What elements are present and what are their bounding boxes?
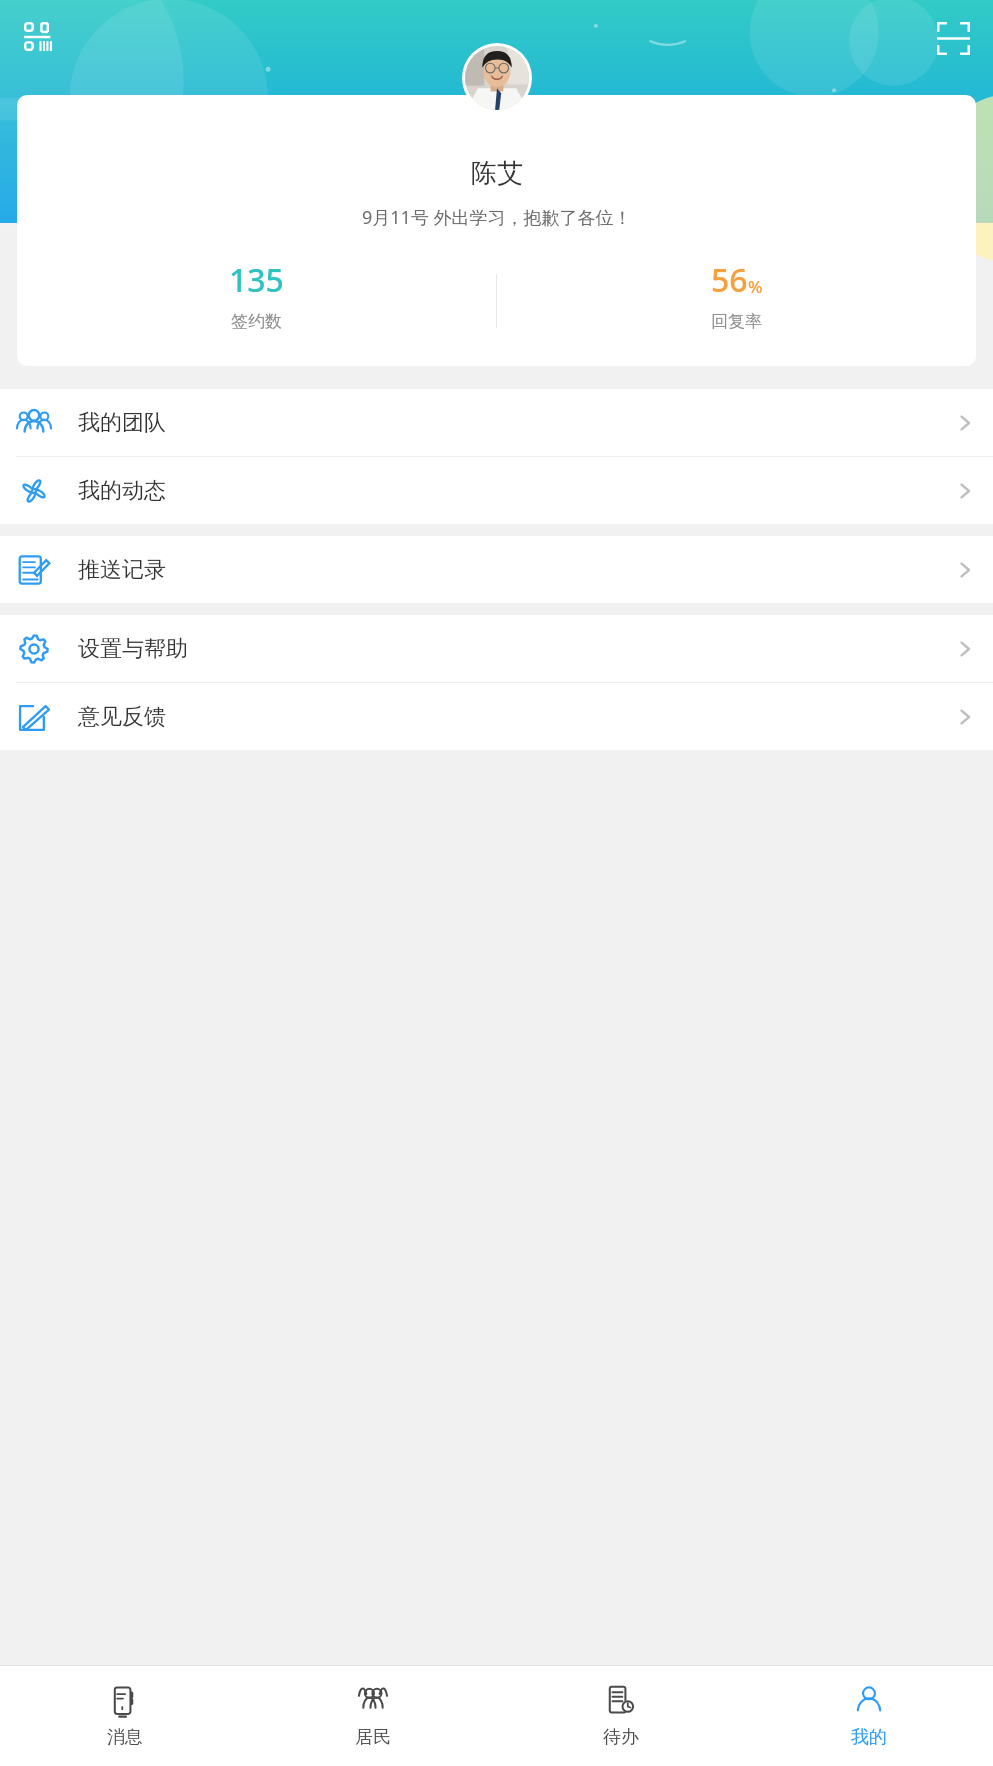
- button[interactable]: 56: [497, 258, 976, 344]
- button[interactable]: 135: [17, 258, 496, 344]
- staticText: 我的: [851, 1726, 887, 1749]
- button[interactable]: 消息: [0, 1666, 249, 1766]
- button[interactable]: 意见反馈: [0, 683, 993, 750]
- staticText: 签约数: [231, 311, 282, 332]
- staticText: 陈艾: [471, 157, 523, 190]
- staticText: 56: [711, 258, 748, 302]
- staticText: 我的团队: [78, 409, 166, 437]
- button[interactable]: Scan: [929, 14, 977, 62]
- staticText: 我的动态: [78, 477, 166, 505]
- staticText: %: [748, 275, 763, 298]
- button[interactable]: 我的: [745, 1666, 993, 1766]
- button[interactable]: 我的团队: [0, 389, 993, 456]
- staticText: 回复率: [711, 311, 762, 332]
- staticText: 待办: [603, 1726, 639, 1749]
- staticText: 意见反馈: [78, 703, 166, 731]
- button[interactable]: 推送记录: [0, 536, 993, 603]
- button[interactable]: 设置与帮助: [0, 615, 993, 682]
- staticText: 9月11号 外出学习，抱歉了各位！: [362, 205, 632, 230]
- staticText: 设置与帮助: [78, 635, 188, 663]
- staticText: 135: [229, 258, 284, 302]
- staticText: 居民: [355, 1726, 391, 1749]
- button[interactable]: 我的动态: [0, 457, 993, 524]
- staticText: 推送记录: [78, 556, 166, 584]
- staticText: 消息: [107, 1726, 143, 1749]
- button[interactable]: 居民: [249, 1666, 497, 1766]
- button[interactable]: QR code: [16, 14, 64, 62]
- button[interactable]: 待办: [497, 1666, 745, 1766]
